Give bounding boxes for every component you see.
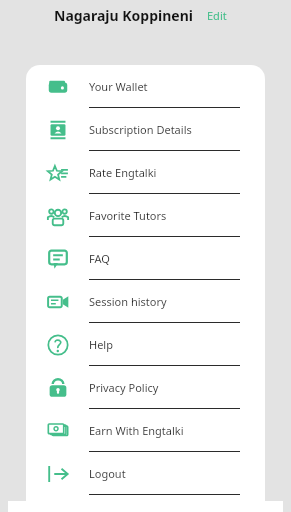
staticText: Session history bbox=[89, 294, 167, 309]
button[interactable]: Help bbox=[26, 323, 265, 366]
staticText: Your Wallet bbox=[89, 79, 148, 94]
button[interactable]: Earn With Engtalki bbox=[26, 409, 265, 452]
staticText: Help bbox=[89, 337, 113, 352]
staticText: Nagaraju Koppineni bbox=[54, 6, 193, 25]
button[interactable]: Favorite Tutors bbox=[26, 194, 265, 237]
button[interactable]: Subscription Details bbox=[26, 108, 265, 151]
staticText: FAQ bbox=[89, 251, 110, 266]
staticText: Rate Engtalki bbox=[89, 165, 157, 180]
staticText: Favorite Tutors bbox=[89, 208, 167, 223]
button[interactable]: Your Wallet bbox=[26, 65, 265, 108]
staticText: Logout bbox=[89, 466, 126, 481]
button[interactable]: Privacy Policy bbox=[26, 366, 265, 409]
button[interactable]: Rate Engtalki bbox=[26, 151, 265, 194]
staticText: Edit bbox=[207, 8, 227, 23]
staticText: Earn With Engtalki bbox=[89, 423, 184, 438]
staticText: Privacy Policy bbox=[89, 380, 159, 395]
staticText: Subscription Details bbox=[89, 122, 192, 137]
button[interactable]: Logout bbox=[26, 452, 265, 495]
button[interactable]: Edit bbox=[205, 6, 229, 25]
button[interactable]: FAQ bbox=[26, 237, 265, 280]
button[interactable]: Session history bbox=[26, 280, 265, 323]
